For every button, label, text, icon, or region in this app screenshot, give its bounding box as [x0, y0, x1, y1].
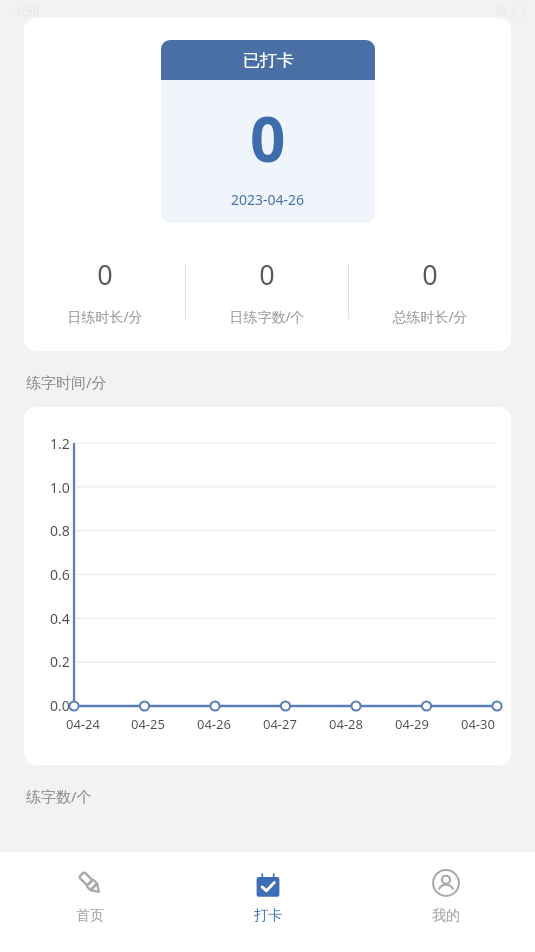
staticText: 2023-04-26 [231, 190, 305, 209]
staticText: 0.4 [50, 609, 70, 628]
staticText: 0 [250, 96, 286, 180]
staticText: 3:58 [14, 2, 40, 20]
staticText: 04-28 [329, 715, 363, 733]
staticText: 0 [259, 256, 275, 293]
button[interactable]: 0 [24, 253, 185, 329]
staticText: 打卡 [254, 907, 282, 925]
staticText: 0 [422, 256, 438, 293]
staticText: 日练字数/个 [229, 307, 305, 326]
staticText: 04-26 [197, 715, 231, 733]
staticText: 0.8 [50, 521, 70, 540]
staticText: 04-25 [131, 715, 165, 733]
button[interactable]: 打卡 [179, 852, 357, 952]
staticText: 0 [97, 256, 113, 293]
staticText: 练字时间/分 [26, 372, 107, 392]
staticText: 1.0 [50, 478, 70, 497]
button[interactable]: 我的 [357, 852, 535, 952]
staticText: 04-29 [395, 715, 429, 733]
staticText: 已打卡 [243, 50, 294, 71]
staticText: 04-27 [263, 715, 297, 733]
staticText: 我的 [432, 907, 460, 925]
staticText: 04-30 [461, 715, 495, 733]
staticText: 0.0 [50, 696, 70, 715]
staticText: 0.2 [50, 652, 70, 671]
staticText: 首页 [76, 907, 104, 925]
staticText: 0.6 [50, 565, 70, 584]
button[interactable]: 0 [349, 253, 511, 329]
staticText: 1.2 [50, 434, 70, 453]
staticText: 日练时长/分 [67, 307, 143, 326]
staticText: 04-24 [66, 715, 100, 733]
staticText: 练字数/个 [26, 786, 92, 806]
button[interactable]: 0 [186, 253, 348, 329]
staticText: 总练时长/分 [392, 307, 468, 326]
button[interactable]: 已打卡 [161, 40, 375, 223]
button[interactable]: 首页 [0, 852, 179, 952]
